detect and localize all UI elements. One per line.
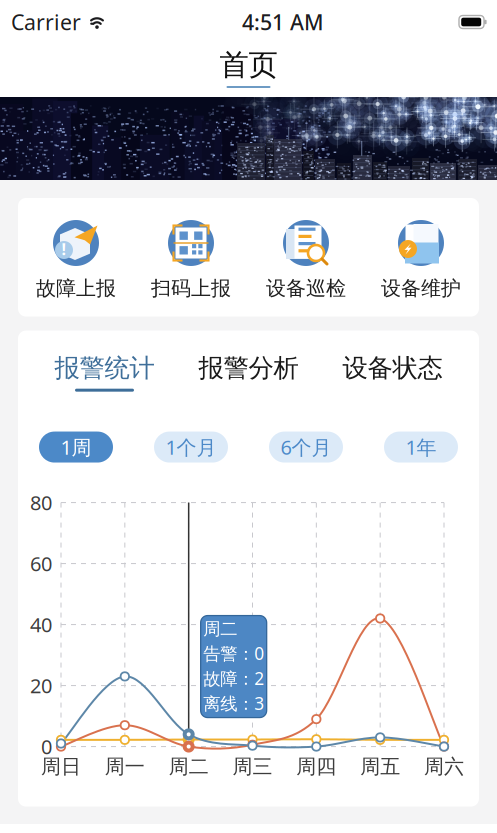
staticText: 40: [30, 611, 52, 638]
button[interactable]: 1年: [363, 395, 478, 463]
staticText: 周四: [296, 754, 336, 779]
staticText: 4:51 AM: [242, 8, 324, 36]
staticText: 1个月: [165, 434, 216, 460]
button[interactable]: 设备巡检: [248, 218, 363, 301]
button[interactable]: 报警分析: [176, 331, 320, 395]
staticText: 周六: [424, 754, 464, 779]
staticText: 设备巡检: [266, 276, 346, 301]
staticText: 周二: [203, 618, 237, 640]
staticText: 周一: [105, 754, 145, 779]
staticText: 扫码上报: [151, 276, 231, 301]
button[interactable]: !: [18, 218, 133, 301]
button[interactable]: 1个月: [133, 395, 248, 463]
staticText: 80: [30, 489, 52, 516]
button[interactable]: 1周: [18, 395, 133, 463]
staticText: 故障上报: [36, 276, 116, 301]
staticText: Carrier: [11, 8, 81, 36]
staticText: 报警分析: [198, 353, 298, 384]
button[interactable]: 设备状态: [320, 331, 464, 395]
staticText: 20: [30, 672, 52, 699]
staticText: 告警：0: [203, 642, 264, 665]
staticText: 周五: [360, 754, 400, 779]
staticText: 首页: [219, 47, 277, 83]
button[interactable]: 报警统计: [32, 331, 176, 395]
staticText: 设备维护: [381, 276, 461, 301]
staticText: 0: [41, 733, 52, 760]
staticText: 故障：2: [203, 667, 264, 690]
staticText: 离线：3: [203, 692, 264, 715]
staticText: 1年: [405, 434, 436, 460]
staticText: !: [61, 238, 66, 260]
staticText: 设备状态: [342, 353, 442, 384]
staticText: 周日: [41, 754, 81, 779]
button[interactable]: 扫码上报: [133, 218, 248, 301]
staticText: 报警统计: [54, 353, 154, 384]
staticText: 1周: [60, 434, 91, 460]
staticText: 周二: [169, 754, 209, 779]
button[interactable]: 6个月: [248, 395, 363, 463]
staticText: 60: [30, 550, 52, 577]
staticText: 6个月: [280, 434, 331, 460]
staticText: 周三: [232, 754, 272, 779]
button[interactable]: 设备维护: [363, 218, 478, 301]
